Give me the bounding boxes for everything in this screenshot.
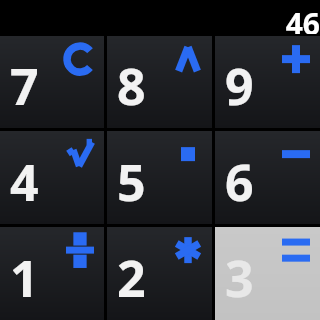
button[interactable]: Key 4 [0,131,104,224]
button[interactable]: Key 3 [215,227,320,320]
staticText: 46 [285,3,320,37]
staticText: 1 [10,244,39,312]
staticText: 7 [10,52,39,120]
button[interactable]: Key 9 [215,36,320,128]
button[interactable]: Key 5 [107,131,212,224]
staticText: 2 [117,244,146,312]
button[interactable]: Key 8 [107,36,212,128]
staticText: 3 [225,244,254,312]
staticText: 6 [225,148,254,216]
staticText: 8 [117,52,146,120]
staticText: 9 [225,52,254,120]
button[interactable]: Key 7 [0,36,104,128]
button[interactable]: Key 6 [215,131,320,224]
button[interactable]: Key 1 [0,227,104,320]
staticText: 4 [10,148,39,216]
button[interactable]: Key 2 [107,227,212,320]
button[interactable]: 46 [0,0,320,34]
staticText: 5 [117,148,146,216]
